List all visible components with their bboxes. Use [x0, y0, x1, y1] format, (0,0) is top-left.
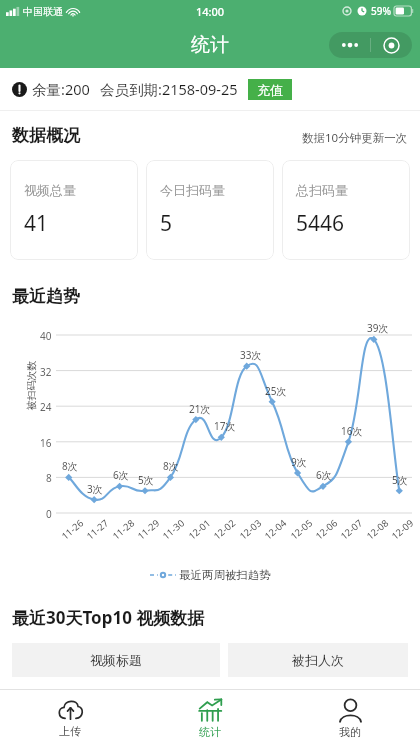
staticText: 24 — [40, 400, 52, 414]
staticText: 25次 — [265, 384, 287, 398]
staticText: 6次 — [113, 468, 129, 482]
staticText: 视频总量 — [24, 182, 76, 198]
staticText: 11-27 — [84, 516, 111, 542]
button[interactable]: 我的 — [280, 690, 420, 747]
staticText: 5446 — [296, 209, 345, 238]
staticText: 40 — [40, 329, 52, 343]
staticText: 6次 — [316, 468, 332, 482]
staticText: 17次 — [214, 419, 236, 433]
staticText: 59% — [371, 4, 391, 18]
staticText: 33次 — [240, 348, 262, 362]
staticText: 11-26 — [59, 516, 86, 542]
staticText: 8 — [46, 471, 52, 485]
staticText: 12-04 — [262, 516, 289, 542]
staticText: 12-07 — [338, 516, 365, 542]
staticText: 余量:200 — [32, 79, 90, 99]
staticText: 11-29 — [135, 516, 162, 542]
staticText: 14:00 — [196, 4, 225, 19]
staticText: 5次 — [392, 473, 408, 487]
staticText: 会员到期:2158-09-25 — [100, 79, 238, 99]
staticText: 16 — [40, 436, 52, 450]
staticText: 0 — [46, 507, 52, 521]
staticText: 21次 — [189, 402, 211, 416]
staticText: 8次 — [163, 459, 179, 473]
staticText: 12-03 — [237, 516, 264, 542]
staticText: 上传 — [59, 724, 81, 738]
button[interactable]: 定位 — [371, 32, 412, 58]
button[interactable]: 统计 — [140, 690, 280, 747]
staticText: 9次 — [291, 455, 307, 469]
button[interactable]: 视频总量 — [10, 160, 138, 260]
staticText: 16次 — [341, 424, 363, 438]
staticText: 最近趋势 — [12, 286, 80, 307]
staticText: 12-08 — [364, 516, 391, 542]
staticText: 11-30 — [160, 516, 187, 542]
staticText: 8次 — [62, 459, 78, 473]
staticText: 被扫码次数 — [24, 360, 37, 410]
button[interactable]: 总扫码量 — [282, 160, 410, 260]
staticText: 3次 — [87, 482, 103, 496]
staticText: 5 — [160, 209, 173, 238]
staticText: 12-05 — [288, 516, 315, 542]
staticText: 12-02 — [211, 516, 238, 542]
staticText: 今日扫码量 — [160, 182, 225, 198]
staticText: 视频标题 — [90, 652, 142, 668]
button[interactable]: 上传 — [0, 690, 140, 747]
staticText: 数据概况 — [12, 125, 80, 146]
staticText: 11-28 — [110, 516, 137, 542]
staticText: 39次 — [367, 321, 389, 335]
button[interactable]: 今日扫码量 — [146, 160, 274, 260]
staticText: 12-06 — [313, 516, 340, 542]
staticText: 最近30天Top10 视频数据 — [12, 606, 205, 629]
staticText: 32 — [40, 365, 52, 379]
staticText: 最近两周被扫趋势 — [179, 568, 271, 582]
button[interactable]: 充值 — [248, 79, 292, 100]
staticText: 数据10分钟更新一次 — [302, 130, 408, 146]
staticText: 充值 — [257, 82, 283, 98]
button[interactable]: 更多 — [329, 32, 370, 58]
staticText: 我的 — [339, 725, 361, 739]
staticText: 统计 — [191, 33, 229, 57]
staticText: 12-01 — [186, 516, 213, 542]
staticText: 5次 — [138, 473, 154, 487]
staticText: 总扫码量 — [296, 182, 348, 198]
staticText: 中国联通 — [23, 5, 63, 18]
staticText: 统计 — [199, 725, 221, 739]
staticText: 被扫人次 — [292, 652, 344, 668]
staticText: 12-09 — [389, 516, 416, 542]
staticText: 41 — [24, 209, 49, 238]
